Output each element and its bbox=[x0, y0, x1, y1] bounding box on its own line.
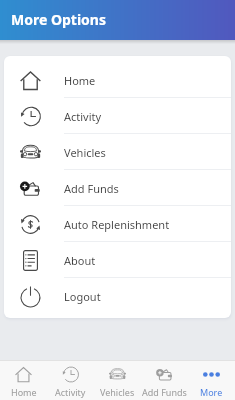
button[interactable]: Activity bbox=[4, 98, 231, 134]
staticText: More bbox=[200, 386, 223, 398]
staticText: Home bbox=[11, 386, 37, 398]
staticText: Activity bbox=[55, 386, 86, 398]
staticText: Activity bbox=[64, 109, 102, 124]
button[interactable]: Auto Replenishment bbox=[4, 206, 231, 242]
staticText: About bbox=[64, 253, 96, 268]
button[interactable]: Vehicles bbox=[94, 361, 141, 400]
staticText: Add Funds bbox=[142, 386, 187, 398]
staticText: Home bbox=[64, 73, 96, 88]
staticText: Vehicles bbox=[100, 386, 135, 398]
staticText: Add Funds bbox=[64, 181, 119, 196]
staticText: Logout bbox=[64, 289, 101, 304]
button[interactable]: About bbox=[4, 242, 231, 278]
button[interactable]: Logout bbox=[4, 278, 231, 314]
button[interactable]: Vehicles bbox=[4, 134, 231, 170]
button[interactable]: Add Funds bbox=[141, 361, 188, 400]
button[interactable]: Add Funds bbox=[4, 170, 231, 206]
button[interactable]: Home bbox=[0, 361, 47, 400]
staticText: Vehicles bbox=[64, 145, 106, 160]
button[interactable]: Activity bbox=[47, 361, 94, 400]
button[interactable]: More bbox=[188, 361, 235, 400]
staticText: More Options bbox=[11, 10, 106, 29]
button[interactable]: Home bbox=[4, 62, 231, 98]
staticText: Auto Replenishment bbox=[64, 217, 170, 232]
